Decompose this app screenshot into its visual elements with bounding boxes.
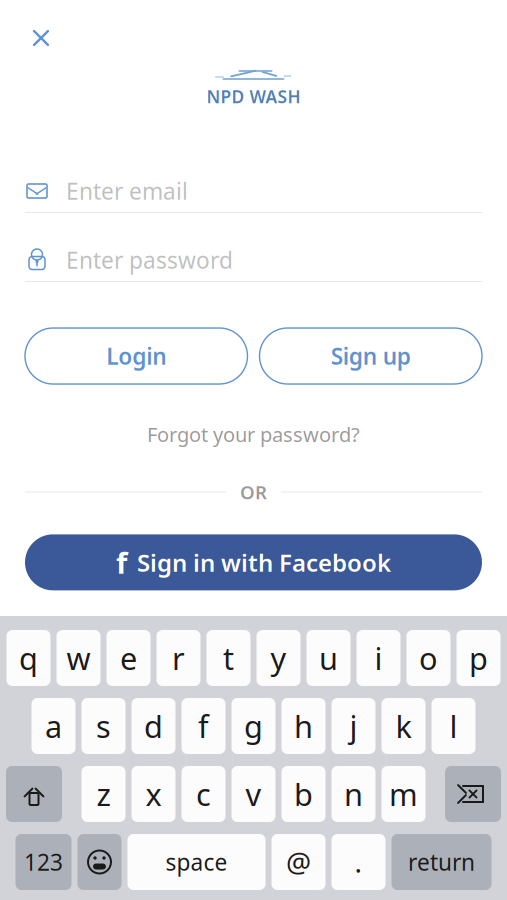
button[interactable]: h (281, 698, 325, 754)
staticText: OR (240, 480, 267, 504)
button[interactable]: u (306, 630, 350, 686)
staticText: Forgot your password? (147, 421, 360, 448)
button[interactable]: f (25, 534, 482, 590)
staticText: a (45, 706, 62, 746)
button[interactable]: q (6, 630, 50, 686)
staticText: q (19, 638, 38, 678)
staticText: b (294, 774, 313, 814)
staticText: Enter email (66, 176, 188, 206)
button[interactable]: @ (271, 834, 325, 890)
staticText: s (96, 706, 111, 746)
staticText: l (449, 706, 457, 746)
button[interactable]: return (391, 834, 491, 890)
staticText: f (116, 543, 127, 582)
staticText: w (66, 638, 90, 678)
staticText: d (144, 706, 163, 746)
staticText: y (270, 638, 286, 678)
staticText: t (223, 638, 234, 678)
staticText: u (319, 638, 338, 678)
button[interactable]: g (231, 698, 275, 754)
button[interactable]: Shift (6, 766, 62, 822)
staticText: n (344, 774, 363, 814)
staticText: e (120, 638, 137, 678)
staticText: k (395, 706, 411, 746)
staticText: return (408, 847, 475, 877)
staticText: Login (106, 341, 166, 371)
button[interactable]: Forgot your password? (137, 415, 370, 454)
staticText: p (469, 638, 488, 678)
staticText: o (419, 638, 438, 678)
button[interactable]: b (281, 766, 325, 822)
staticText: Sign up (331, 341, 411, 371)
button[interactable]: c (181, 766, 225, 822)
button[interactable]: s (81, 698, 125, 754)
button[interactable]: m (381, 766, 425, 822)
button[interactable]: f (181, 698, 225, 754)
button[interactable]: a (31, 698, 75, 754)
button[interactable]: 123 (15, 834, 71, 890)
button[interactable]: Emoji (77, 834, 121, 890)
button[interactable]: e (106, 630, 150, 686)
staticText: f (198, 706, 209, 746)
button[interactable]: n (331, 766, 375, 822)
button[interactable]: i (356, 630, 400, 686)
staticText: m (389, 774, 418, 814)
button[interactable]: t (206, 630, 250, 686)
button[interactable]: z (81, 766, 125, 822)
staticText: . (354, 843, 362, 881)
staticText: NPD WASH (206, 85, 300, 108)
button[interactable]: Delete (445, 766, 501, 822)
button[interactable]: w (56, 630, 100, 686)
staticText: x (145, 774, 161, 814)
button[interactable]: y (256, 630, 300, 686)
staticText: z (96, 774, 110, 814)
button[interactable]: v (231, 766, 275, 822)
staticText: space (165, 847, 227, 877)
button[interactable]: o (406, 630, 450, 686)
staticText: g (244, 706, 263, 746)
staticText: j (349, 706, 357, 746)
button[interactable]: p (456, 630, 500, 686)
button[interactable]: d (131, 698, 175, 754)
button[interactable]: r (156, 630, 200, 686)
button[interactable]: . (331, 834, 385, 890)
button[interactable]: Login (25, 328, 247, 384)
staticText: @ (286, 843, 311, 881)
staticText: Enter password (66, 245, 233, 275)
button[interactable]: x (131, 766, 175, 822)
staticText: Sign in with Facebook (137, 546, 391, 578)
button[interactable]: j (331, 698, 375, 754)
staticText: 123 (24, 847, 63, 877)
button[interactable]: l (431, 698, 475, 754)
staticText: r (172, 638, 185, 678)
staticText: h (294, 706, 313, 746)
button[interactable]: space (127, 834, 265, 890)
button[interactable]: k (381, 698, 425, 754)
staticText: c (196, 774, 211, 814)
button[interactable]: Sign up (259, 328, 482, 384)
staticText: i (374, 638, 382, 678)
staticText: v (245, 774, 261, 814)
button[interactable]: Close (19, 16, 63, 60)
